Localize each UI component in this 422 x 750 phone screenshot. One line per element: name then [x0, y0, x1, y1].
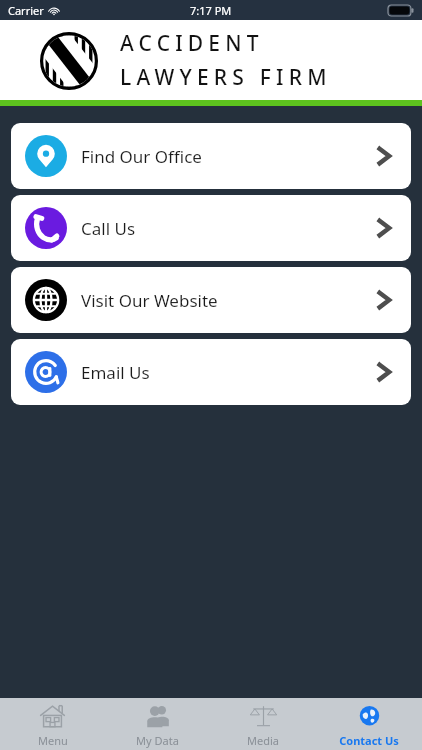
button[interactable]: Menu [0, 698, 105, 750]
staticText: ACCIDENT [120, 29, 264, 58]
staticText: My Data [136, 733, 179, 748]
button[interactable]: Email Us [11, 339, 411, 405]
staticText: Visit Our Website [81, 289, 218, 312]
staticText: Find Our Office [81, 145, 202, 168]
button[interactable]: Call Us [11, 195, 411, 261]
staticText: LAWYERS FIRM [120, 63, 332, 92]
staticText: Carrier [8, 3, 44, 18]
button[interactable]: My Data [105, 698, 210, 750]
button[interactable]: Find Our Office [11, 123, 411, 189]
button[interactable]: Contact Us [316, 698, 422, 750]
staticText: Email Us [81, 361, 150, 384]
staticText: Contact Us [339, 733, 399, 748]
staticText: Call Us [81, 217, 136, 240]
staticText: Menu [38, 733, 68, 748]
button[interactable]: Visit Our Website [11, 267, 411, 333]
staticText: 7:17 PM [190, 3, 232, 18]
button[interactable]: Media [210, 698, 316, 750]
staticText: Media [247, 733, 279, 748]
